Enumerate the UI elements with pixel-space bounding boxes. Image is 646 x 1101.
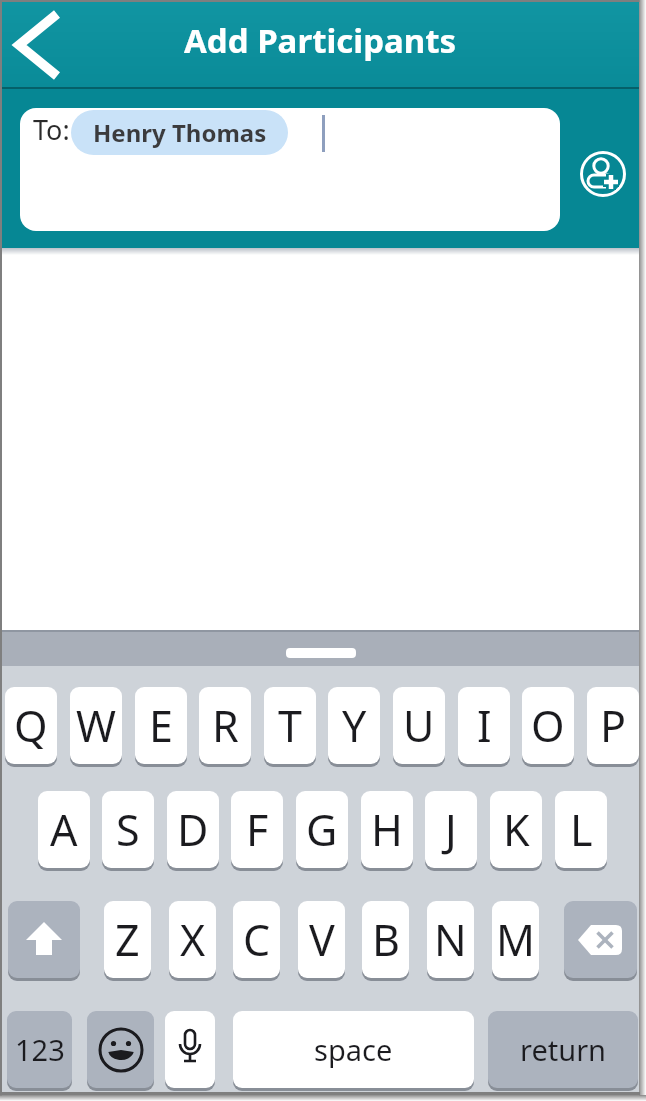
staticText: D xyxy=(177,800,209,859)
button[interactable] xyxy=(87,1011,154,1088)
button[interactable] xyxy=(2,2,82,87)
button[interactable]: return xyxy=(488,1011,638,1088)
button[interactable]: F xyxy=(231,791,283,868)
staticText: L xyxy=(570,800,593,859)
button[interactable]: G xyxy=(296,791,348,868)
button[interactable]: A xyxy=(38,791,90,868)
button[interactable] xyxy=(165,1011,215,1088)
button[interactable]: R xyxy=(199,687,251,764)
button[interactable]: M xyxy=(492,901,539,978)
button[interactable]: P xyxy=(587,687,639,764)
button[interactable] xyxy=(580,151,626,197)
staticText: Z xyxy=(115,910,140,969)
button[interactable]: D xyxy=(167,791,219,868)
button[interactable]: V xyxy=(298,901,345,978)
button[interactable]: To: xyxy=(20,108,560,231)
staticText: space xyxy=(314,1030,393,1069)
button[interactable]: I xyxy=(458,687,510,764)
button[interactable]: S xyxy=(102,791,154,868)
button[interactable] xyxy=(564,901,637,978)
staticText: K xyxy=(503,800,530,859)
button[interactable]: Henry Thomas xyxy=(71,110,288,155)
staticText: O xyxy=(531,696,565,755)
staticText: N xyxy=(434,910,467,969)
button[interactable]: B xyxy=(362,901,409,978)
staticText: Y xyxy=(342,696,367,755)
staticText: 123 xyxy=(15,1030,65,1069)
staticText: return xyxy=(520,1030,607,1069)
staticText: M xyxy=(496,910,536,969)
staticText: F xyxy=(246,800,269,859)
staticText: A xyxy=(50,800,78,859)
button[interactable] xyxy=(8,901,80,978)
button[interactable]: J xyxy=(425,791,477,868)
button[interactable]: Y xyxy=(328,687,380,764)
staticText: I xyxy=(477,696,492,755)
staticText: U xyxy=(403,696,435,755)
staticText: T xyxy=(278,696,302,755)
button[interactable]: H xyxy=(361,791,413,868)
button[interactable]: X xyxy=(169,901,216,978)
staticText: P xyxy=(600,696,627,755)
button[interactable]: K xyxy=(490,791,542,868)
staticText: E xyxy=(149,696,173,755)
button[interactable]: Q xyxy=(5,687,57,764)
staticText: S xyxy=(116,800,140,859)
button[interactable]: C xyxy=(233,901,280,978)
staticText: W xyxy=(76,696,116,755)
button[interactable]: 123 xyxy=(7,1011,72,1088)
button[interactable]: N xyxy=(427,901,474,978)
staticText: J xyxy=(445,800,457,859)
staticText: Add Participants xyxy=(184,18,457,63)
staticText: X xyxy=(180,910,206,969)
staticText: C xyxy=(243,910,271,969)
staticText: H xyxy=(371,800,403,859)
staticText: To: xyxy=(33,111,70,148)
staticText: G xyxy=(306,800,338,859)
staticText: Henry Thomas xyxy=(93,116,267,149)
button[interactable]: U xyxy=(393,687,445,764)
button[interactable]: Z xyxy=(104,901,151,978)
button[interactable]: L xyxy=(555,791,607,868)
button[interactable]: O xyxy=(522,687,574,764)
button[interactable]: W xyxy=(70,687,122,764)
button[interactable]: E xyxy=(135,687,187,764)
staticText: Q xyxy=(14,696,48,755)
button[interactable]: space xyxy=(233,1011,474,1088)
button[interactable]: T xyxy=(264,687,316,764)
staticText: B xyxy=(372,910,400,969)
staticText: R xyxy=(212,696,239,755)
staticText: V xyxy=(309,910,335,969)
